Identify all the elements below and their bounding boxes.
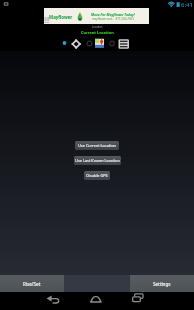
- button[interactable]: List view: [107, 38, 119, 50]
- button[interactable]: Back: [44, 292, 68, 310]
- staticText: Settings: [153, 281, 171, 287]
- staticText: Move For Mayflower Today!: [91, 12, 135, 17]
- button[interactable]: Mayflower: [44, 8, 149, 24]
- staticText: Location: [92, 25, 103, 29]
- button[interactable]: Rise/Set: [0, 275, 64, 292]
- button[interactable]: Use Last Known Location: [74, 156, 121, 165]
- button[interactable]: Use GPS location: [70, 38, 82, 50]
- button[interactable]: Settings: [130, 275, 194, 292]
- button[interactable]: Home: [90, 292, 114, 310]
- staticText: mayflower.com 877-206-2503: [92, 17, 134, 21]
- staticText: Use Current Location: [78, 143, 116, 148]
- staticText: Rise/Set: [23, 281, 41, 287]
- staticText: Disable GPS: [86, 173, 108, 178]
- button[interactable]: Disable GPS: [84, 171, 110, 180]
- staticText: Current Location: [81, 30, 114, 35]
- staticText: 6:41: [181, 1, 193, 9]
- staticText: Mayflower: [49, 14, 73, 20]
- staticText: Use Last Known Location: [75, 158, 120, 163]
- button[interactable]: Recent apps: [132, 292, 156, 310]
- button[interactable]: Menu: [117, 38, 129, 50]
- button[interactable]: Map view: [84, 38, 96, 50]
- button[interactable]: Use Current Location: [75, 141, 119, 150]
